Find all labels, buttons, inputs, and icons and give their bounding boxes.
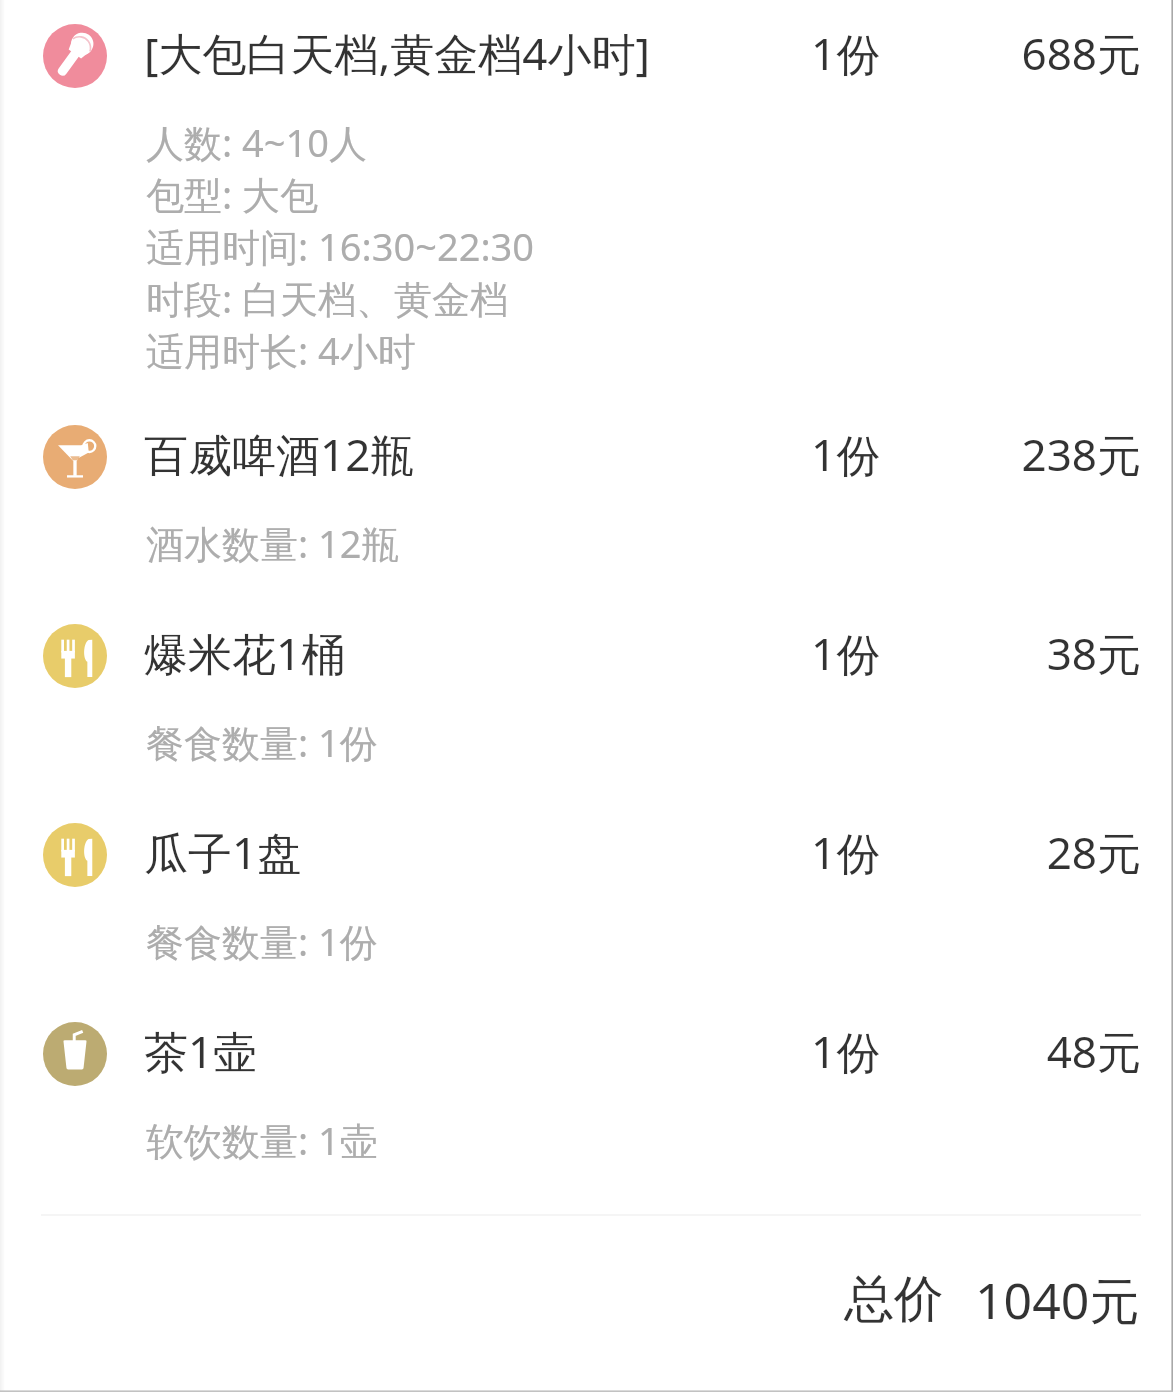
staticText: 瓜子1盘	[144, 822, 811, 882]
staticText: 1份	[811, 623, 881, 683]
button[interactable]: Karaoke room package	[5, 0, 1171, 401]
staticText: 酒水数量: 12瓶	[146, 517, 400, 569]
staticText: 爆米花1桶	[144, 623, 811, 683]
staticText: 总价	[844, 1268, 944, 1331]
staticText: 人数: 4~10人	[146, 116, 368, 168]
other: Soft drink	[43, 1022, 107, 1086]
staticText: 1份	[811, 23, 881, 83]
staticText: 688元	[907, 23, 1141, 83]
button[interactable]: Food	[5, 600, 1171, 799]
staticText: 1份	[811, 1021, 881, 1081]
button[interactable]: 总价	[5, 1266, 1171, 1332]
staticText: 38元	[907, 623, 1141, 683]
staticText: 1040元	[975, 1266, 1140, 1332]
staticText: 餐食数量: 1份	[146, 716, 378, 768]
staticText: 时段: 白天档、黄金档	[146, 272, 509, 324]
staticText: 238元	[907, 424, 1141, 484]
staticText: [大包白天档,黄金档4小时]	[144, 23, 811, 83]
other: Food	[43, 624, 107, 688]
staticText: 适用时长: 4小时	[146, 324, 416, 376]
button[interactable]: Food	[5, 799, 1171, 998]
staticText: 茶1壶	[144, 1021, 811, 1081]
staticText: 28元	[907, 822, 1141, 882]
staticText: 百威啤酒12瓶	[144, 424, 811, 484]
button[interactable]: Drinks	[5, 401, 1171, 600]
staticText: 1份	[811, 822, 881, 882]
staticText: 1份	[811, 424, 881, 484]
staticText: 48元	[907, 1021, 1141, 1081]
staticText: 餐食数量: 1份	[146, 915, 378, 967]
staticText: 包型: 大包	[146, 168, 319, 220]
other: Karaoke room package	[43, 24, 107, 88]
button[interactable]: Soft drink	[5, 998, 1171, 1197]
other: Food	[43, 823, 107, 887]
other: Drinks	[43, 425, 107, 489]
staticText: 适用时间: 16:30~22:30	[146, 220, 535, 272]
staticText: 软饮数量: 1壶	[146, 1114, 378, 1166]
